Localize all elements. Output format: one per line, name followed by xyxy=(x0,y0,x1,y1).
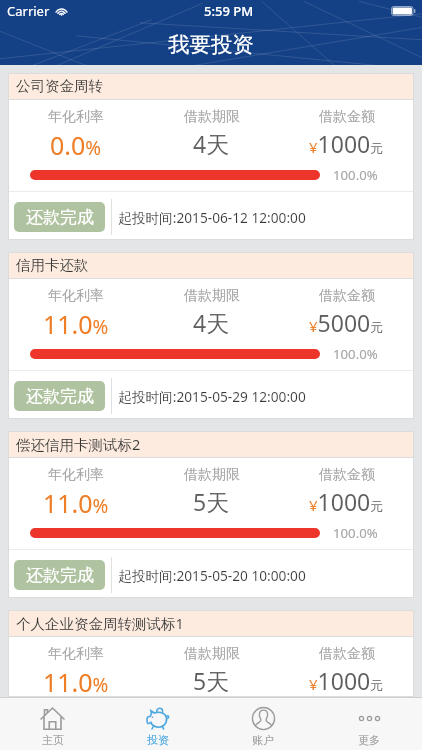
staticText: 5:59 PM xyxy=(204,2,254,20)
staticText: 11.0% xyxy=(43,486,109,520)
staticText: 年化利率 xyxy=(48,108,104,126)
staticText: 起投时间:2015-06-12 12:00:00 xyxy=(118,208,306,227)
button[interactable]: 公司资金周转 xyxy=(8,73,414,240)
staticText: 5天 xyxy=(193,665,230,696)
button[interactable]: Home xyxy=(0,698,105,750)
staticText: 年化利率 xyxy=(48,466,104,484)
staticText: 账户 xyxy=(252,733,274,747)
staticText: 信用卡还款 xyxy=(16,256,89,274)
staticText: 11.0% xyxy=(43,665,109,697)
staticText: 11.0% xyxy=(43,307,109,341)
staticText: 起投时间:2015-05-29 12:00:00 xyxy=(118,387,306,406)
button[interactable]: 还款完成 xyxy=(14,560,105,590)
staticText: 还款完成 xyxy=(26,386,94,407)
button[interactable]: 个人企业资金周转测试标1 xyxy=(8,610,414,697)
staticText: Carrier xyxy=(7,2,50,20)
staticText: 5天 xyxy=(193,486,230,517)
button[interactable]: 偿还信用卡测试标2 xyxy=(8,431,414,598)
staticText: 我要投资 xyxy=(168,31,254,58)
staticText: 100.0% xyxy=(333,524,378,542)
staticText: 借款期限 xyxy=(184,645,240,663)
staticText: 借款金额 xyxy=(319,466,375,484)
button[interactable]: 信用卡还款 xyxy=(8,252,414,419)
staticText: 借款金额 xyxy=(319,108,375,126)
staticText: 4天 xyxy=(193,128,230,159)
button[interactable]: 还款完成 xyxy=(14,381,105,411)
staticText: 借款金额 xyxy=(319,287,375,305)
staticText: 借款期限 xyxy=(184,108,240,126)
staticText: ¥1000元 xyxy=(309,486,384,517)
staticText: ¥1000元 xyxy=(309,665,384,696)
button[interactable]: Invest xyxy=(105,698,210,750)
staticText: 4天 xyxy=(193,307,230,338)
staticText: 借款期限 xyxy=(184,287,240,305)
staticText: 借款金额 xyxy=(319,645,375,663)
button[interactable]: More xyxy=(316,698,422,750)
button[interactable]: Account xyxy=(210,698,316,750)
staticText: 100.0% xyxy=(333,345,378,363)
staticText: 年化利率 xyxy=(48,645,104,663)
staticText: 主页 xyxy=(42,733,64,747)
staticText: 公司资金周转 xyxy=(16,77,103,95)
staticText: 0.0% xyxy=(50,128,102,162)
staticText: 投资 xyxy=(147,733,169,747)
staticText: 还款完成 xyxy=(26,565,94,586)
staticText: 100.0% xyxy=(333,166,378,184)
staticText: 偿还信用卡测试标2 xyxy=(16,434,141,454)
staticText: 年化利率 xyxy=(48,287,104,305)
staticText: 还款完成 xyxy=(26,207,94,228)
button[interactable]: 还款完成 xyxy=(14,202,105,232)
staticText: 更多 xyxy=(358,733,380,747)
staticText: 个人企业资金周转测试标1 xyxy=(16,613,184,633)
staticText: 起投时间:2015-05-20 10:00:00 xyxy=(118,566,306,585)
staticText: ¥1000元 xyxy=(309,128,384,159)
staticText: ¥5000元 xyxy=(309,307,384,338)
staticText: 借款期限 xyxy=(184,466,240,484)
